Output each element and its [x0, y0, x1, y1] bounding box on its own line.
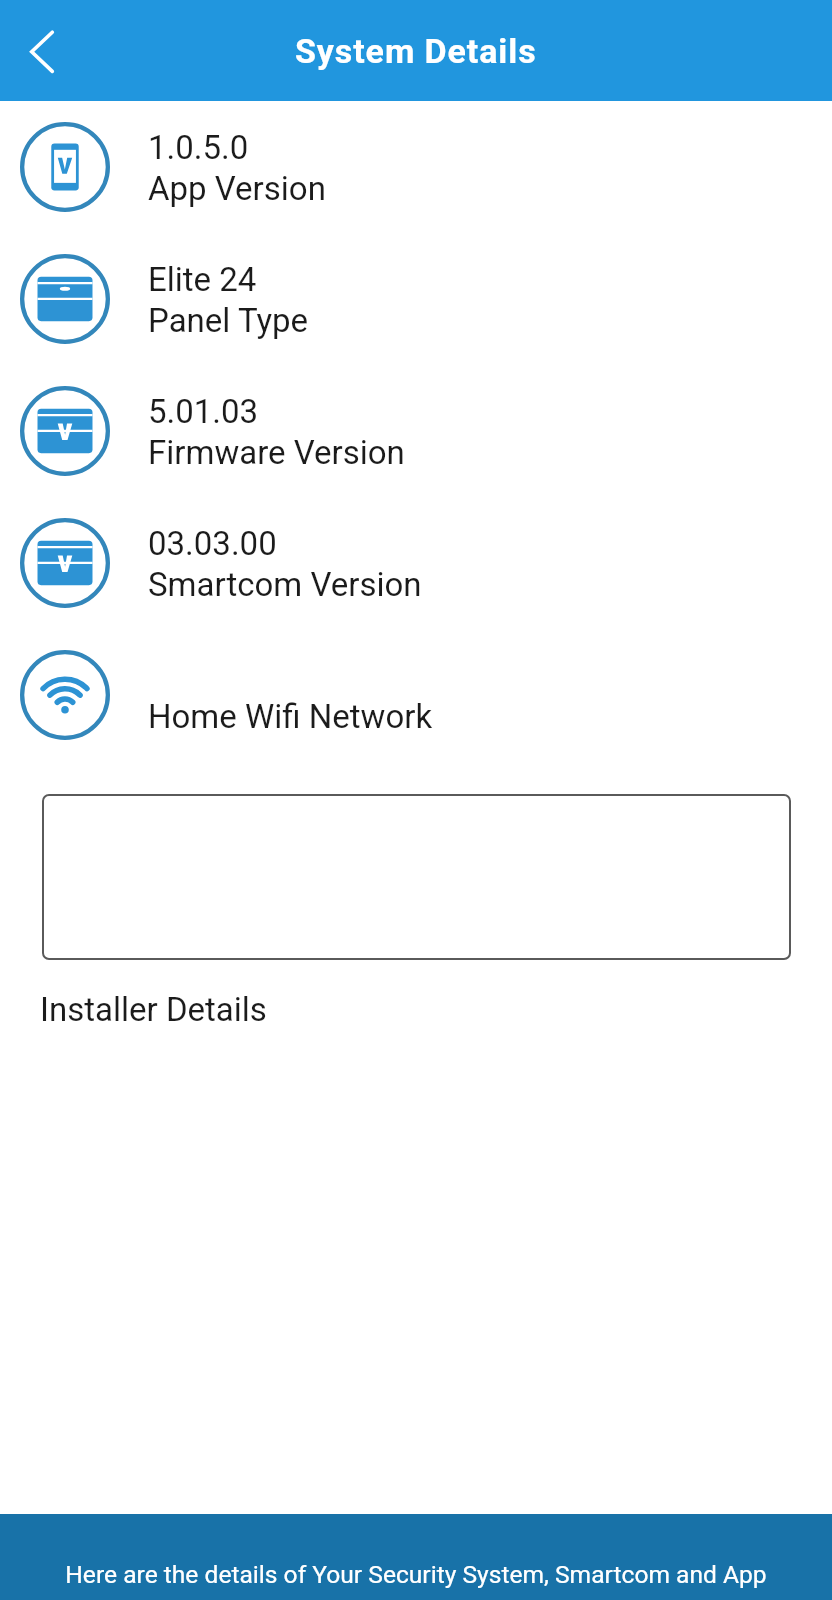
button[interactable] — [42, 794, 791, 960]
staticText: 5.01.03 Firmware Version — [148, 392, 405, 472]
staticText: Elite 24 Panel Type — [148, 260, 309, 340]
staticText: 1.0.5.0 App Version — [148, 128, 326, 208]
button[interactable]: 1.0.5.0 App Version — [0, 101, 832, 233]
staticText: Home Wifi Network — [148, 656, 433, 736]
button[interactable]: Home Wifi Network — [0, 629, 832, 761]
button[interactable]: 5.01.03 Firmware Version — [0, 365, 832, 497]
staticText: Installer Details — [40, 990, 267, 1029]
button[interactable]: Elite 24 Panel Type — [0, 233, 832, 365]
button[interactable]: Here are the details of Your Security Sy… — [0, 1514, 832, 1600]
button[interactable]: 03.03.00 Smartcom Version — [0, 497, 832, 629]
button[interactable]: Back — [7, 16, 77, 86]
staticText: Here are the details of Your Security Sy… — [65, 1560, 767, 1589]
staticText: System Details — [295, 31, 537, 71]
staticText: 03.03.00 Smartcom Version — [148, 524, 422, 604]
